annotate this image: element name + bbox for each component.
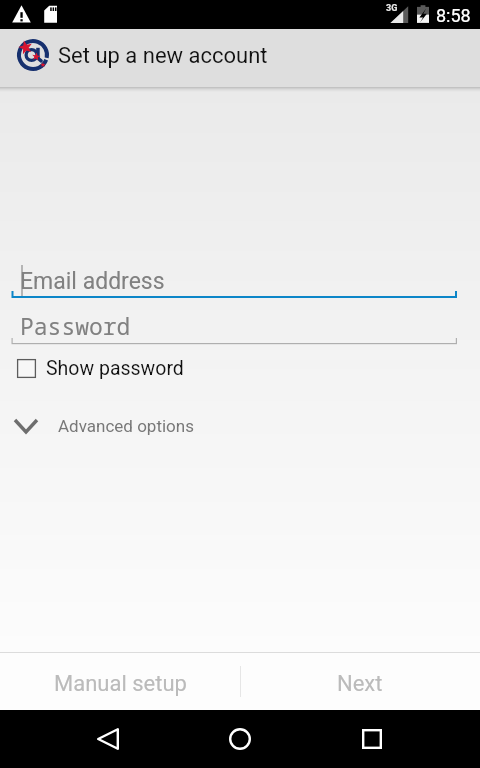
button[interactable]: Manual setup [0, 655, 240, 713]
button[interactable]: Home [210, 710, 270, 768]
button[interactable]: Advanced options [0, 410, 480, 442]
staticText: Manual setup [54, 671, 187, 697]
staticText: Show password [46, 357, 184, 380]
button[interactable]: Back [78, 710, 138, 768]
button[interactable]: Next [240, 655, 480, 713]
staticText: Password [20, 310, 131, 341]
staticText: 3G [386, 3, 398, 14]
button[interactable]: Password [0, 307, 480, 347]
staticText: Set up a new account [58, 43, 268, 69]
staticText: Email address [20, 268, 165, 295]
staticText: Next [337, 671, 383, 697]
button[interactable]: Email address [0, 260, 480, 300]
button[interactable]: Recent apps [342, 710, 402, 768]
staticText: 8:58 [436, 5, 471, 26]
button[interactable]: Show password [0, 352, 480, 386]
staticText: Advanced options [58, 416, 194, 436]
